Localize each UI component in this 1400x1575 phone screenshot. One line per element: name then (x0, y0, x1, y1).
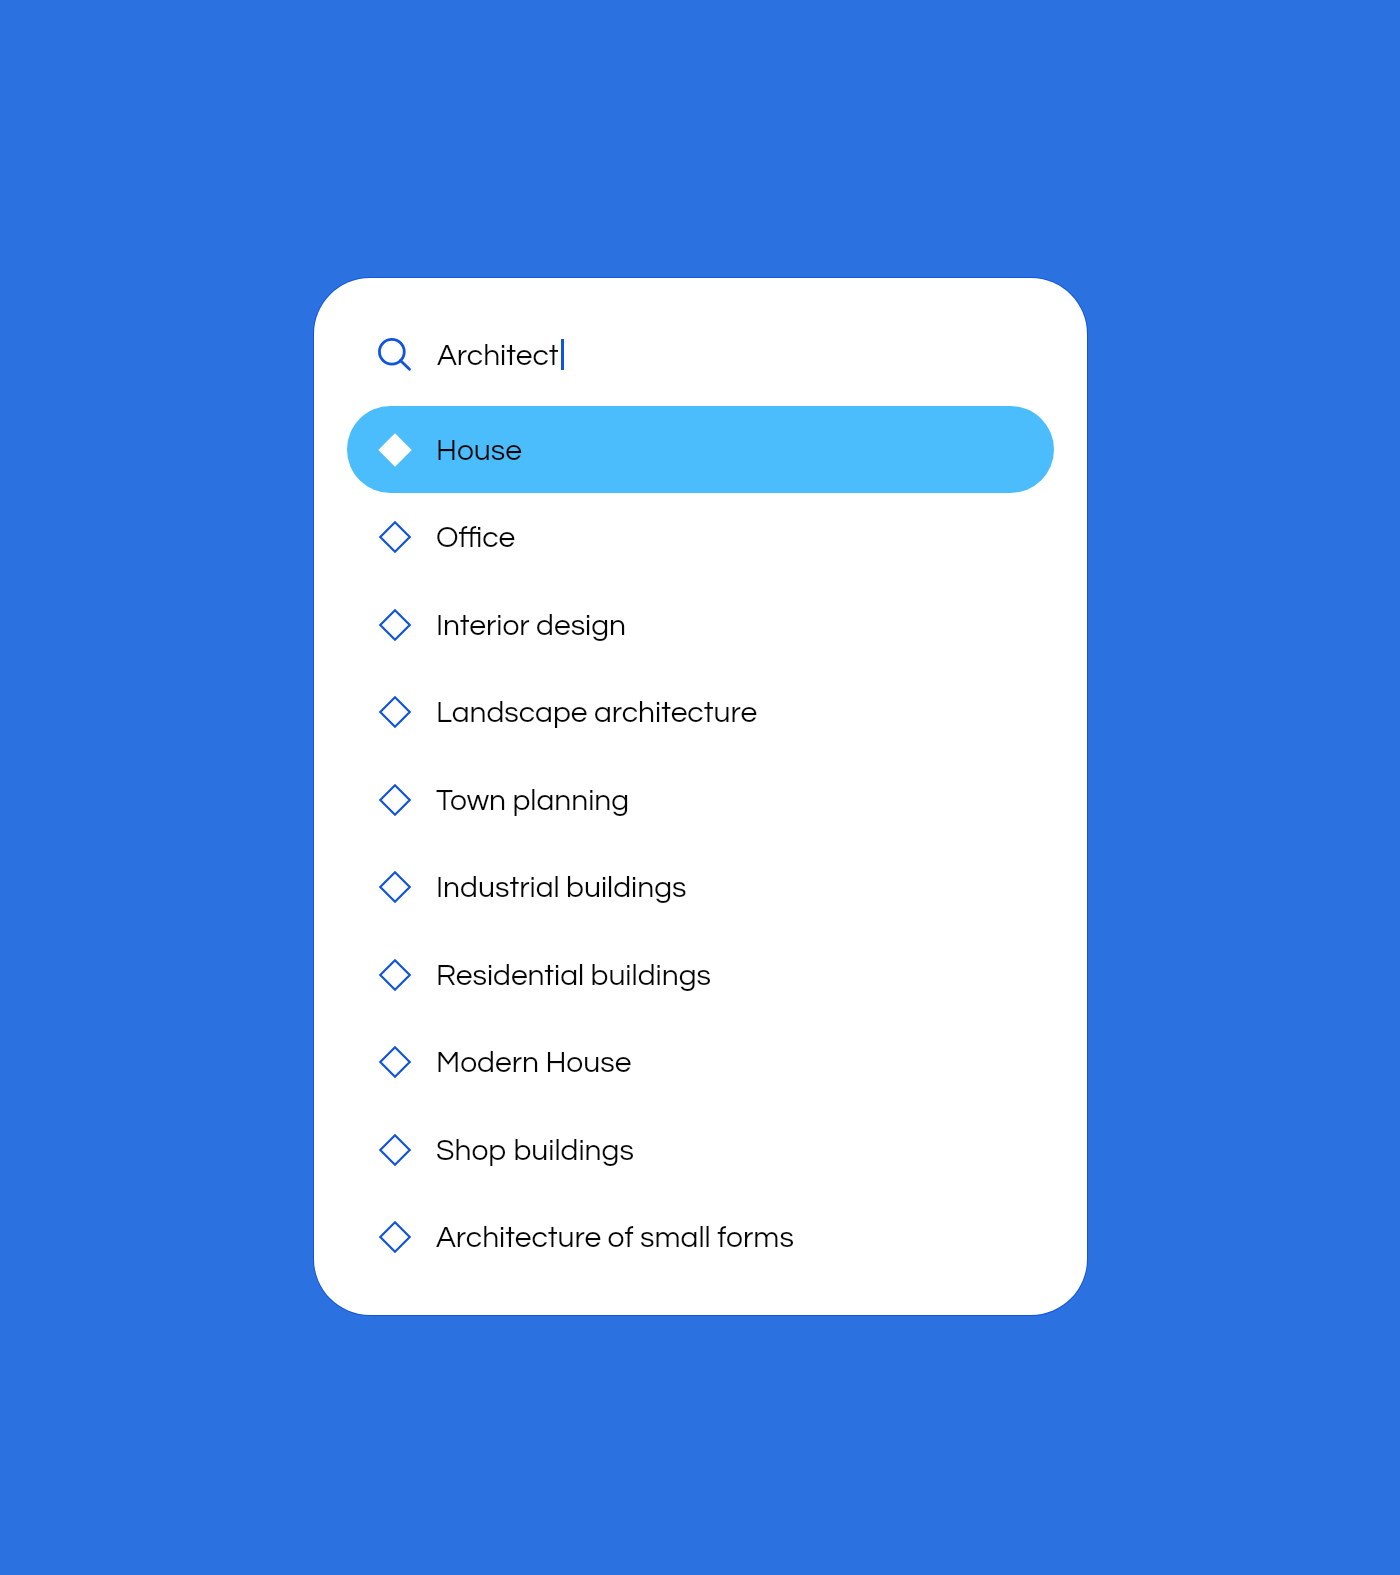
button[interactable]: Interior design (347, 581, 1054, 668)
staticText: Landscape architecture (436, 697, 758, 728)
button[interactable]: Office (347, 493, 1054, 580)
staticText: Interior design (436, 610, 627, 641)
button[interactable]: Landscape architecture (347, 668, 1054, 755)
staticText: Architect (437, 340, 559, 371)
staticText: Residential buildings (436, 960, 711, 991)
button[interactable]: Town planning (347, 756, 1054, 843)
staticText: Office (436, 522, 516, 553)
button[interactable]: Modern House (347, 1018, 1054, 1105)
staticText: Shop buildings (436, 1135, 634, 1166)
staticText: Town planning (436, 785, 630, 816)
staticText: Industrial buildings (436, 872, 687, 903)
button[interactable]: House (347, 406, 1054, 493)
other: Search (374, 334, 418, 378)
button[interactable]: Search (314, 278, 1087, 406)
staticText: Modern House (436, 1047, 632, 1078)
button[interactable]: Shop buildings (347, 1106, 1054, 1193)
button[interactable]: Industrial buildings (347, 843, 1054, 930)
button[interactable]: Residential buildings (347, 931, 1054, 1018)
staticText: Architecture of small forms (436, 1222, 794, 1253)
button[interactable]: Architecture of small forms (347, 1193, 1054, 1280)
staticText: House (436, 435, 522, 466)
